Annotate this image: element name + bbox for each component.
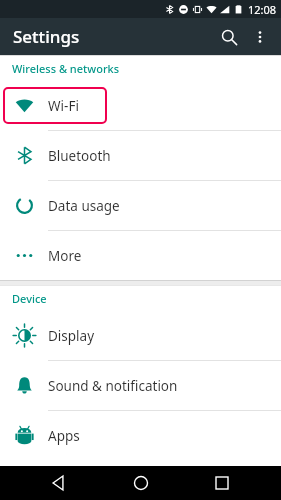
button[interactable]: Apps xyxy=(0,411,281,460)
button[interactable]: More options xyxy=(245,22,275,52)
staticText: Apps xyxy=(48,427,80,445)
staticText: Settings xyxy=(13,25,80,48)
button[interactable]: Search xyxy=(213,21,245,53)
button[interactable]: Data usage xyxy=(0,181,281,230)
staticText: Device xyxy=(12,291,47,306)
button[interactable]: Recent apps xyxy=(200,466,244,500)
button[interactable]: Wi-Fi xyxy=(0,81,281,130)
staticText: Display xyxy=(48,327,95,345)
staticText: Wi-Fi xyxy=(48,97,79,115)
button[interactable]: More xyxy=(0,231,281,280)
staticText: Data usage xyxy=(48,197,120,215)
button[interactable]: Sound & notification xyxy=(0,361,281,410)
staticText: More xyxy=(48,247,82,265)
staticText: 12:08 xyxy=(248,2,277,17)
button[interactable]: Bluetooth xyxy=(0,131,281,180)
button[interactable]: Home xyxy=(119,466,163,500)
button[interactable]: Display xyxy=(0,311,281,360)
staticText: Bluetooth xyxy=(48,147,111,165)
staticText: Wireless & networks xyxy=(12,61,120,76)
staticText: Sound & notification xyxy=(48,377,178,395)
button[interactable]: Back xyxy=(37,466,81,500)
